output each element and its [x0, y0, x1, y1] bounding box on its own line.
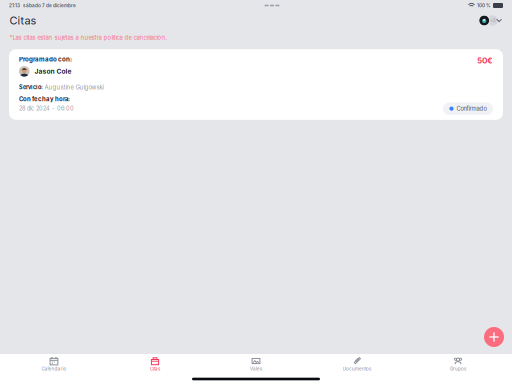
staticText: Augustine Gulgowski	[44, 84, 103, 91]
staticText: +3	[489, 18, 495, 23]
staticText: 50€	[477, 56, 493, 65]
staticText: Servicio:	[19, 84, 43, 91]
button[interactable]: Vales	[205, 353, 306, 375]
staticText: Programado con:	[19, 56, 72, 63]
staticText: Citas	[9, 14, 36, 27]
staticText: 100 %	[477, 3, 491, 8]
staticText: Documentos	[343, 366, 371, 372]
button[interactable]: Nueva cita	[484, 327, 504, 347]
staticText: 21:13 sábado 7 de diciembre	[9, 3, 76, 8]
staticText: Citas	[150, 366, 160, 372]
button[interactable]: Citas	[104, 353, 205, 375]
staticText: Confirmado	[457, 105, 487, 112]
staticText: 28 dic 2024 - 06:00	[19, 105, 74, 112]
staticText: Calendario	[41, 366, 66, 372]
button[interactable]: Documentos	[306, 353, 407, 375]
staticText: Vales	[250, 366, 262, 372]
button[interactable]: Calendario	[3, 353, 104, 375]
staticText: Grupos	[450, 366, 466, 372]
staticText: Jason Cole	[34, 67, 71, 75]
button[interactable]: Grupos	[407, 353, 508, 375]
staticText: Con fecha y hora:	[19, 95, 70, 103]
button[interactable]: Cuenta	[475, 15, 502, 26]
staticText: *Las citas están sujetas a nuestra polít…	[9, 34, 167, 41]
